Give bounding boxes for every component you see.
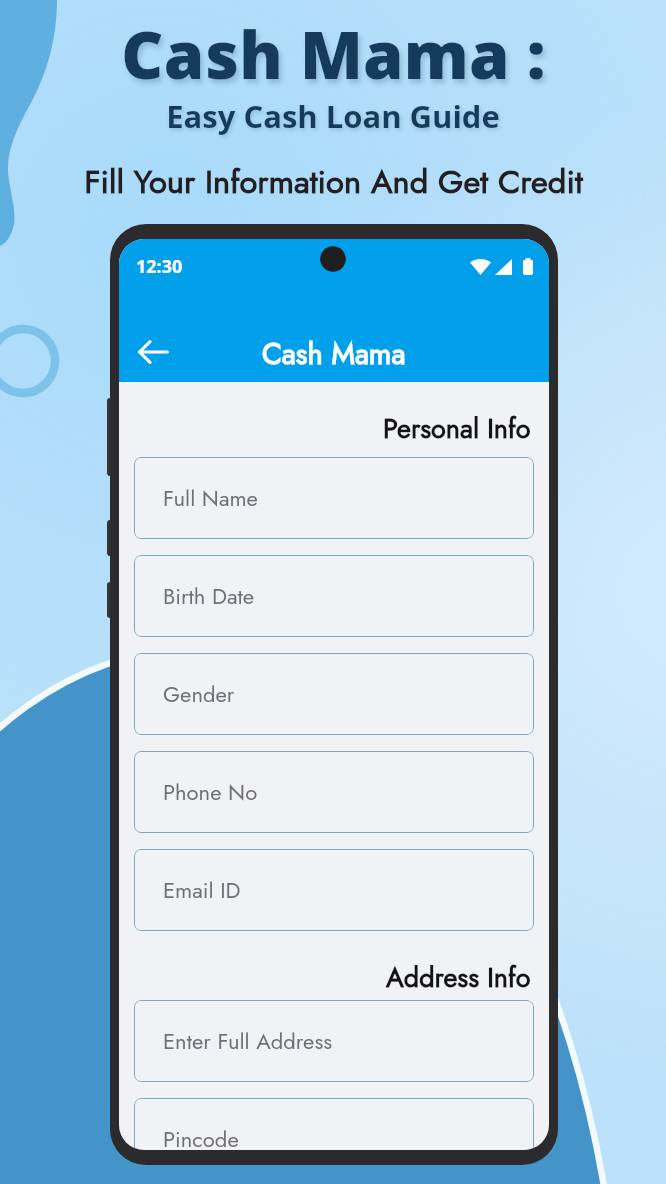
button[interactable]: Back [129,328,177,376]
staticText: Cash Mama : [121,10,546,99]
staticText: Personal Info [383,409,531,448]
staticText: Address Info [386,958,531,997]
staticText: 12:30 [136,254,183,279]
button[interactable]: Enter Full Address [134,1000,534,1082]
button[interactable]: Pincode [134,1098,534,1150]
staticText: Gender [163,678,235,710]
staticText: Full Name [163,482,258,514]
button[interactable]: Email ID [134,849,534,931]
staticText: Birth Date [163,580,255,612]
staticText: Email ID [163,874,241,906]
staticText: Easy Cash Loan Guide [166,95,500,137]
button[interactable]: Birth Date [134,555,534,637]
staticText: Enter Full Address [163,1025,333,1057]
staticText: Cash Mama [262,333,406,375]
staticText: Fill Your Information And Get Credit [84,158,583,205]
staticText: Pincode [163,1123,239,1150]
button[interactable]: Gender [134,653,534,735]
staticText: Phone No [163,776,258,808]
button[interactable]: Full Name [134,457,534,539]
button[interactable]: Phone No [134,751,534,833]
